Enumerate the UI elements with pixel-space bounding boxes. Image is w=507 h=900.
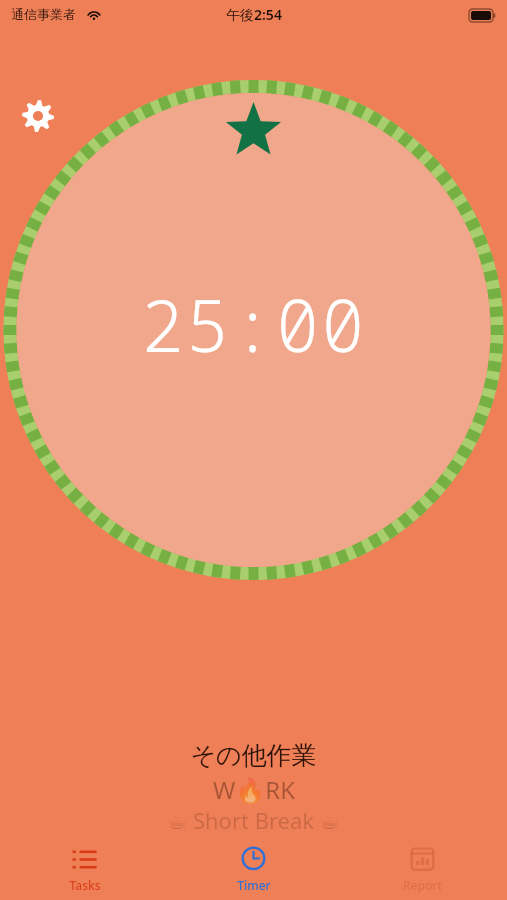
staticText: Report — [403, 877, 442, 893]
button[interactable]: Timer — [169, 838, 338, 900]
staticText: ☕ Short Break ☕ — [167, 805, 340, 835]
button[interactable]: ☕ Short Break ☕ — [0, 805, 507, 835]
button[interactable]: Settings — [16, 94, 60, 138]
button[interactable]: W🔥RK — [0, 773, 507, 805]
button[interactable]: Report — [338, 838, 507, 900]
staticText: W🔥RK — [213, 773, 295, 805]
staticText: 午後2:54 — [226, 5, 282, 24]
staticText: 25:00 — [140, 275, 367, 373]
staticText: その他作業 — [190, 740, 317, 771]
staticText: Tasks — [69, 877, 101, 893]
button[interactable]: その他作業 — [0, 737, 507, 773]
staticText: Timer — [237, 877, 271, 893]
button[interactable]: Tasks — [0, 838, 169, 900]
staticText: 通信事業者 — [11, 6, 76, 22]
